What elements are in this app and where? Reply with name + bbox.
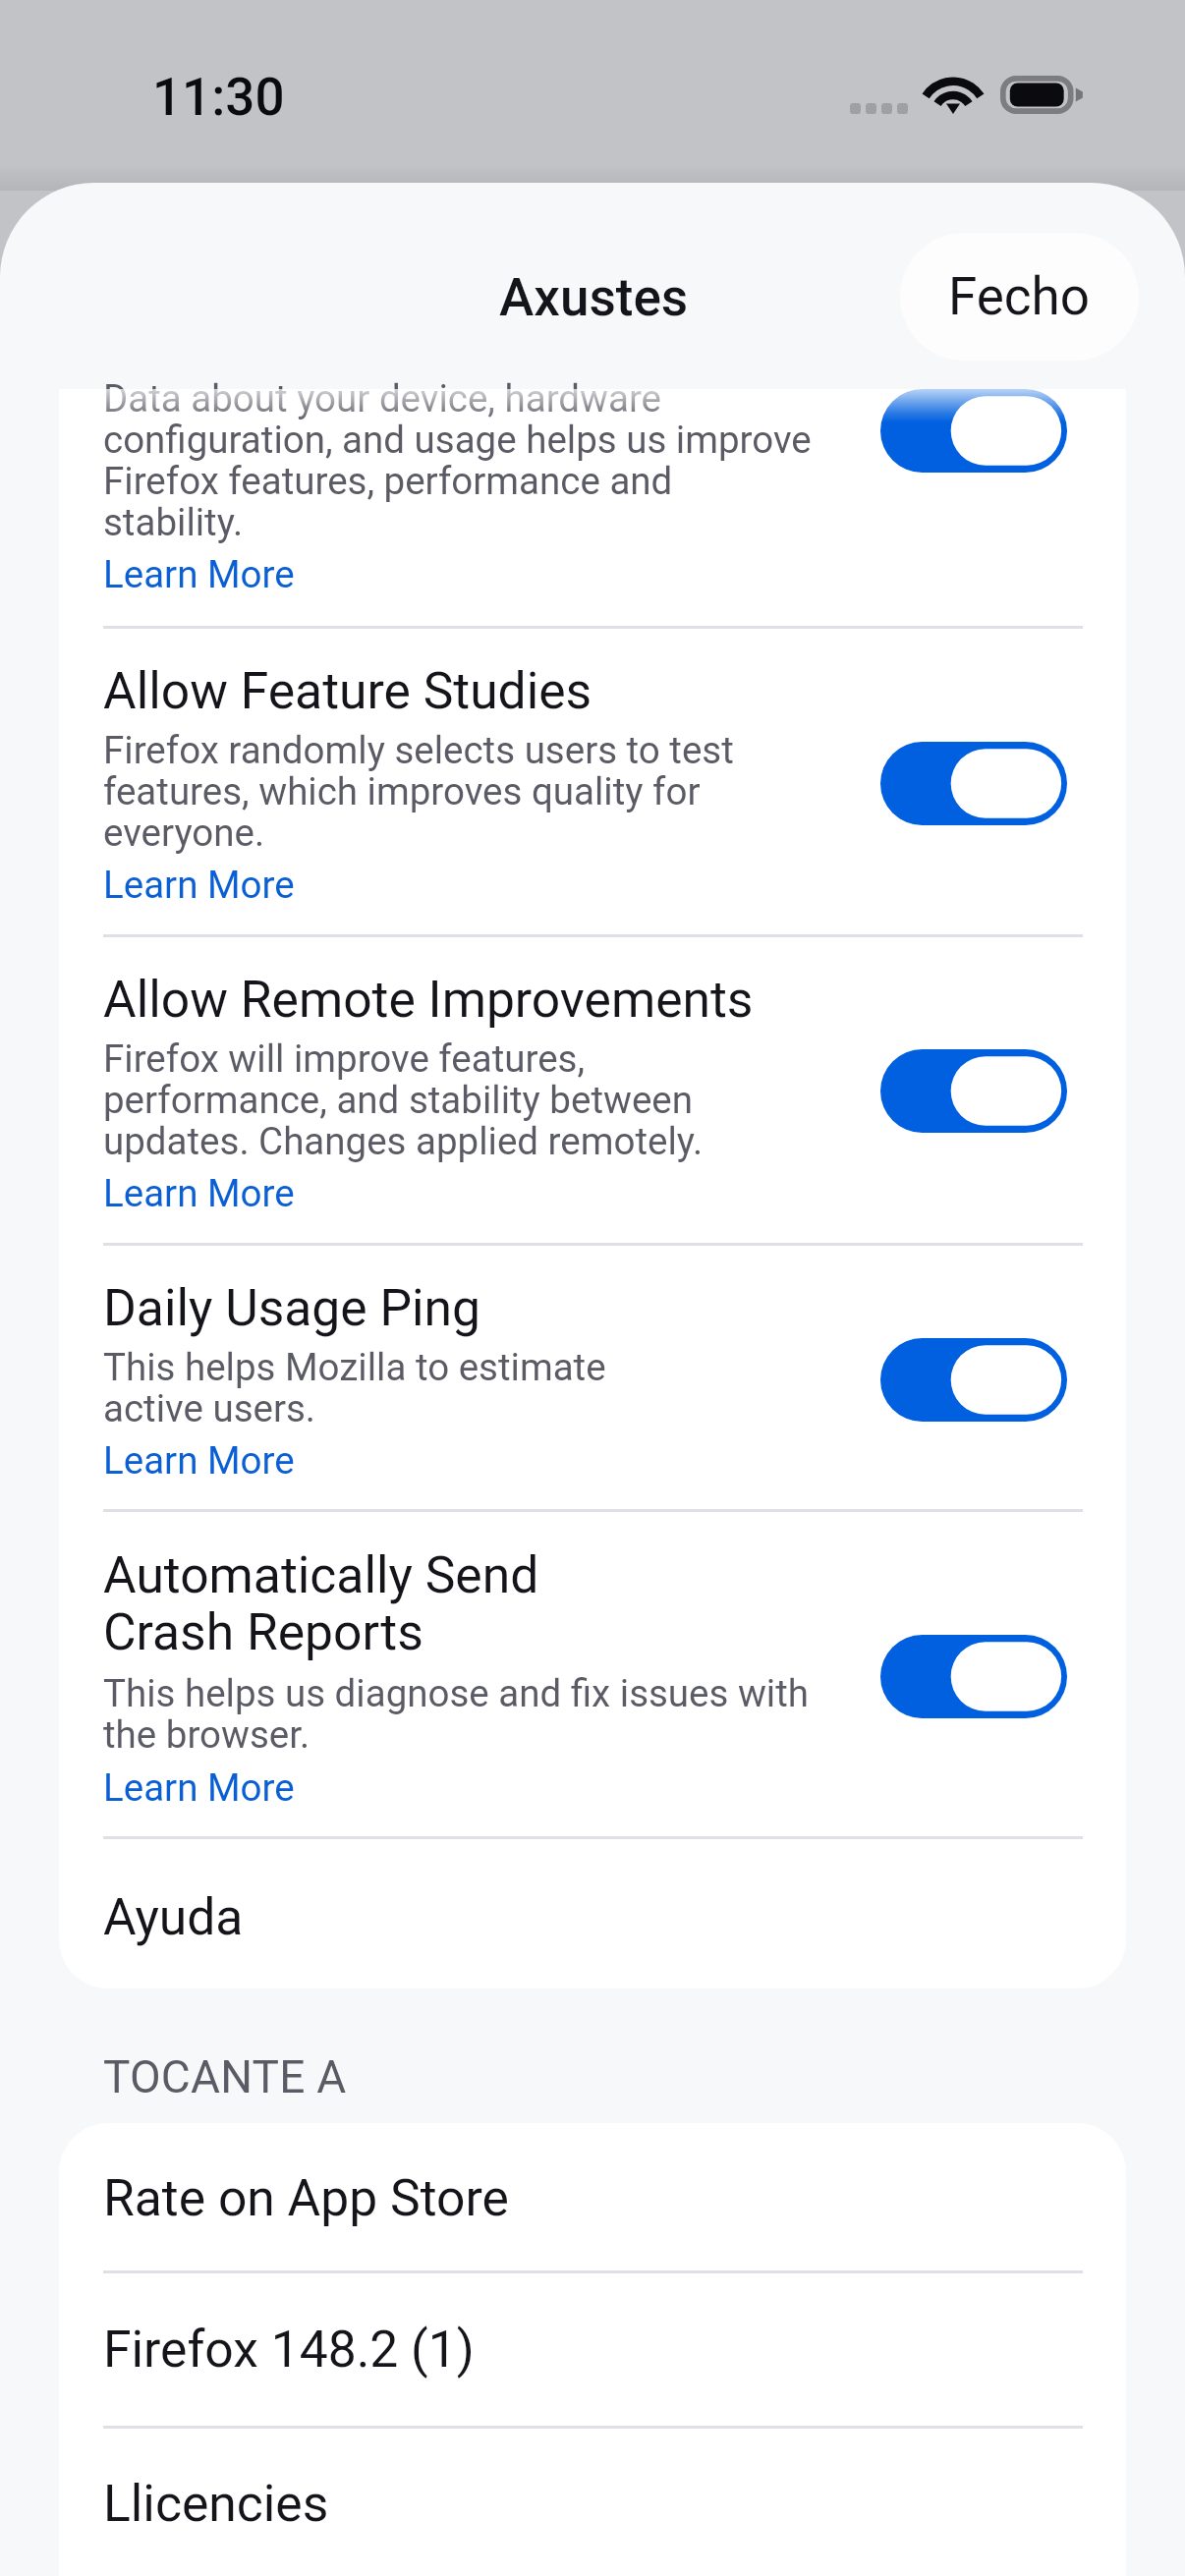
button[interactable]: Firefox 148.2 (1) [59, 2270, 1126, 2426]
staticText: configuration, and usage helps us improv… [103, 418, 812, 462]
button[interactable]: Rate on App Store [59, 2123, 1126, 2270]
button[interactable]: Learn More [103, 1765, 295, 1810]
button[interactable]: Llicencies [59, 2426, 1126, 2576]
staticText: Firefox 148.2 (1) [103, 2320, 475, 2379]
other: Battery full [1000, 76, 1082, 114]
button[interactable]: Automatically Send [59, 1509, 1126, 1836]
staticText: This helps Mozilla to estimate [103, 1345, 606, 1389]
other: Wi-Fi [928, 76, 979, 115]
button[interactable]: Send technical and interaction data, on [880, 389, 1067, 473]
staticText: everyone. [103, 811, 265, 855]
staticText: performance, and stability between [103, 1078, 694, 1122]
staticText: Allow Feature Studies [103, 661, 592, 720]
button[interactable]: Learn More [103, 1438, 295, 1483]
button[interactable]: Allow Remote Improvements [59, 934, 1126, 1243]
staticText: Daily Usage Ping [103, 1278, 481, 1337]
staticText: Data about your device, hardware [103, 376, 662, 420]
button[interactable]: Allow Feature Studies, on [880, 742, 1067, 825]
staticText: This helps us diagnose and fix issues wi… [103, 1671, 810, 1715]
button[interactable]: Data about your device, hardware [59, 389, 1126, 626]
staticText: Fecho [948, 266, 1091, 327]
button[interactable]: Fecho [900, 233, 1139, 361]
button[interactable]: Allow Feature Studies [59, 626, 1126, 934]
staticText: Firefox will improve features, [103, 1036, 586, 1081]
staticText: active users. [103, 1386, 315, 1430]
staticText: Allow Remote Improvements [103, 970, 754, 1029]
staticText: Rate on App Store [103, 2168, 509, 2227]
staticText: updates. Changes applied remotely. [103, 1119, 704, 1163]
button[interactable]: Learn More [103, 552, 295, 596]
other: Cellular signal [850, 103, 908, 114]
button[interactable]: Allow Remote Improvements, on [880, 1049, 1067, 1133]
staticText: Llicencies [103, 2474, 329, 2533]
button[interactable]: Automatically Send Crash Reports, on [880, 1635, 1067, 1718]
staticText: Axustes [499, 267, 689, 328]
staticText: Crash Reports [103, 1602, 423, 1661]
button[interactable]: Ayuda [59, 1836, 1126, 1988]
staticText: Learn More [103, 1438, 295, 1483]
staticText: Learn More [103, 1765, 295, 1810]
button[interactable]: Daily Usage Ping [59, 1243, 1126, 1509]
staticText: Firefox randomly selects users to test [103, 728, 734, 772]
staticText: Learn More [103, 863, 295, 907]
staticText: Automatically Send [103, 1545, 539, 1604]
staticText: Learn More [103, 552, 295, 596]
staticText: features, which improves quality for [103, 769, 701, 813]
staticText: Learn More [103, 1171, 295, 1215]
staticText: stability. [103, 500, 244, 544]
staticText: Ayuda [103, 1887, 244, 1946]
staticText: Firefox features, performance and [103, 459, 673, 503]
button[interactable]: Daily Usage Ping, on [880, 1338, 1067, 1422]
staticText: 11:30 [152, 67, 285, 128]
button[interactable]: Learn More [103, 1171, 295, 1215]
staticText: TOCANTE A [103, 2050, 347, 2103]
staticText: the browser. [103, 1712, 310, 1757]
button[interactable]: Learn More [103, 863, 295, 907]
